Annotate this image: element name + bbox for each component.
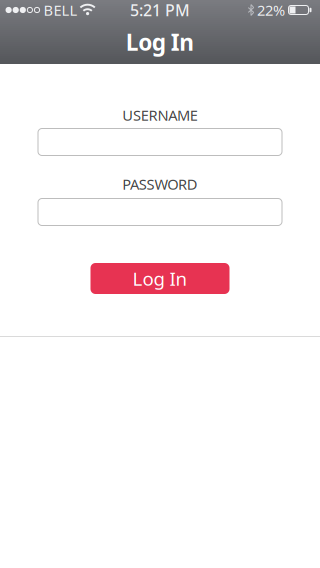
staticText: 22% bbox=[257, 0, 285, 20]
staticText: USERNAME bbox=[122, 105, 198, 125]
staticText: 5:21 PM bbox=[130, 0, 190, 21]
button[interactable]: Username bbox=[37, 128, 282, 156]
button[interactable]: Password bbox=[37, 198, 282, 226]
button[interactable]: Log In bbox=[90, 263, 229, 294]
staticText: Log In bbox=[132, 266, 187, 291]
staticText: BELL bbox=[44, 0, 78, 20]
staticText: Log In bbox=[126, 27, 194, 57]
staticText: PASSWORD bbox=[122, 174, 198, 194]
